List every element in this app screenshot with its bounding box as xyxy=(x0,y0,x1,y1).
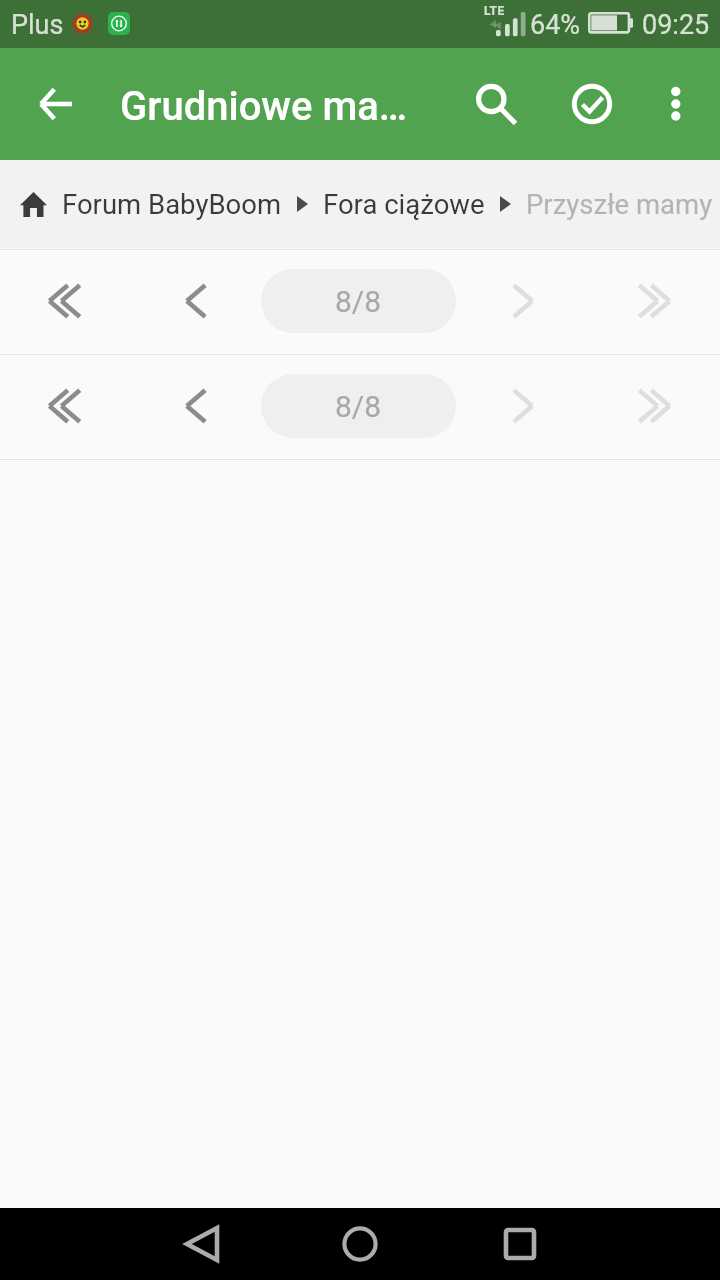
button[interactable]: 8/8 xyxy=(261,269,456,333)
staticText: LTE xyxy=(484,4,505,18)
staticText: Grudniowe ma… xyxy=(120,83,408,130)
staticText: 64% xyxy=(530,9,581,41)
button[interactable]: Next page xyxy=(475,356,571,458)
button[interactable]: Last page xyxy=(606,251,702,353)
button[interactable]: Next page xyxy=(475,251,571,353)
button[interactable]: Forum BabyBoom xyxy=(62,188,282,220)
button[interactable]: Last page xyxy=(606,356,702,458)
button[interactable]: Search xyxy=(446,48,536,160)
staticText: 8/8 xyxy=(335,284,382,319)
button[interactable]: More options xyxy=(636,48,720,160)
button[interactable]: Recent apps xyxy=(470,1208,570,1280)
button[interactable]: First page xyxy=(17,356,113,458)
staticText: Przyszłe mamy xyxy=(526,188,713,220)
staticText: 8/8 xyxy=(335,389,382,424)
staticText: 09:25 xyxy=(642,9,710,41)
button[interactable]: Home xyxy=(19,160,47,248)
staticText: Plus xyxy=(11,9,64,41)
button[interactable]: Back xyxy=(152,1208,252,1280)
button[interactable]: Back xyxy=(0,48,112,160)
button[interactable]: Previous page xyxy=(148,356,244,458)
button[interactable]: Previous page xyxy=(148,251,244,353)
button[interactable]: Home xyxy=(310,1208,410,1280)
button[interactable]: Fora ciążowe xyxy=(323,188,485,220)
button[interactable]: First page xyxy=(17,251,113,353)
button[interactable]: Mark as read xyxy=(548,48,636,160)
button[interactable]: 8/8 xyxy=(261,374,456,438)
